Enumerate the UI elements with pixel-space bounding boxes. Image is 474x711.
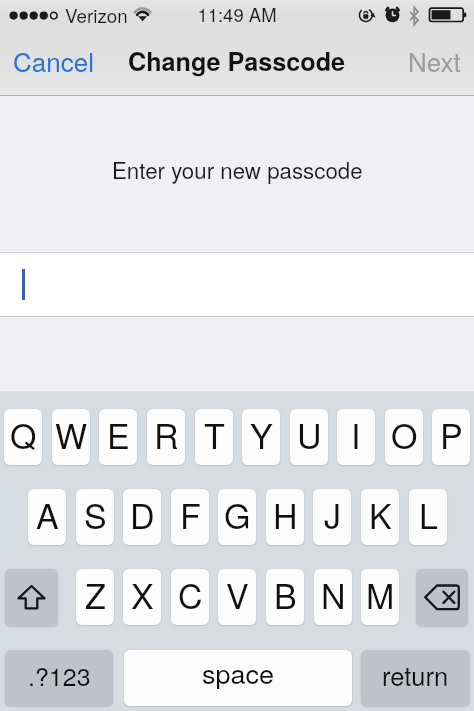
staticText: Y bbox=[250, 410, 273, 459]
button[interactable]: Y bbox=[242, 409, 280, 465]
button[interactable]: return bbox=[361, 650, 470, 706]
staticText: P bbox=[440, 410, 463, 459]
button[interactable]: Next bbox=[395, 32, 474, 89]
staticText: Cancel bbox=[13, 42, 94, 79]
button[interactable]: P bbox=[432, 409, 470, 465]
button[interactable]: D bbox=[123, 489, 161, 545]
button[interactable]: V bbox=[218, 569, 256, 625]
button[interactable]: E bbox=[99, 409, 137, 465]
staticText: D bbox=[130, 490, 155, 539]
staticText: return bbox=[382, 657, 449, 694]
staticText: G bbox=[224, 490, 251, 539]
staticText: L bbox=[419, 490, 438, 539]
button[interactable]: F bbox=[171, 489, 209, 545]
button[interactable]: T bbox=[195, 409, 233, 465]
staticText: H bbox=[273, 490, 298, 539]
staticText: T bbox=[204, 410, 225, 459]
button[interactable]: S bbox=[76, 489, 114, 545]
button[interactable]: N bbox=[314, 569, 352, 625]
staticText: R bbox=[154, 410, 179, 459]
staticText: Enter your new passcode bbox=[112, 153, 363, 185]
button[interactable]: U bbox=[290, 409, 328, 465]
button[interactable]: Shift bbox=[5, 569, 58, 626]
staticText: M bbox=[366, 570, 395, 619]
button[interactable]: Backspace bbox=[416, 569, 468, 626]
staticText: V bbox=[226, 570, 249, 619]
button[interactable]: B bbox=[266, 569, 304, 625]
button[interactable]: C bbox=[171, 569, 209, 625]
staticText: J bbox=[324, 490, 341, 539]
staticText: W bbox=[55, 410, 88, 459]
button[interactable]: .?123 bbox=[5, 650, 113, 706]
button[interactable]: K bbox=[361, 489, 399, 545]
staticText: Next bbox=[408, 42, 461, 79]
staticText: Change Passcode bbox=[128, 43, 346, 79]
button[interactable]: L bbox=[409, 489, 447, 545]
staticText: A bbox=[36, 490, 59, 539]
staticText: C bbox=[178, 570, 203, 619]
staticText: I bbox=[351, 410, 361, 459]
button[interactable]: Cancel bbox=[0, 32, 107, 89]
staticText: 11:49 AM bbox=[0, 1, 474, 27]
staticText: .?123 bbox=[28, 657, 91, 693]
button[interactable]: R bbox=[147, 409, 185, 465]
button[interactable]: space bbox=[124, 650, 352, 706]
staticText: Verizon bbox=[65, 1, 128, 28]
staticText: F bbox=[180, 490, 201, 539]
staticText: B bbox=[274, 570, 297, 619]
button[interactable]: X bbox=[123, 569, 161, 625]
staticText: N bbox=[321, 570, 346, 619]
staticText: E bbox=[107, 410, 130, 459]
button[interactable]: W bbox=[52, 409, 90, 465]
button[interactable]: M bbox=[361, 569, 399, 625]
button[interactable]: Z bbox=[76, 569, 114, 625]
button[interactable]: G bbox=[218, 489, 256, 545]
staticText: K bbox=[369, 490, 392, 539]
button[interactable]: Q bbox=[4, 409, 42, 465]
staticText: space bbox=[202, 653, 275, 692]
button[interactable]: H bbox=[266, 489, 304, 545]
button[interactable]: A bbox=[28, 489, 66, 545]
staticText: Z bbox=[85, 570, 106, 619]
staticText: S bbox=[84, 490, 107, 539]
button[interactable]: O bbox=[385, 409, 423, 465]
staticText: Q bbox=[10, 410, 37, 459]
button[interactable]: I bbox=[337, 409, 375, 465]
staticText: U bbox=[297, 410, 322, 459]
button[interactable]: J bbox=[313, 489, 351, 545]
staticText: X bbox=[131, 570, 154, 619]
staticText: O bbox=[391, 410, 418, 459]
